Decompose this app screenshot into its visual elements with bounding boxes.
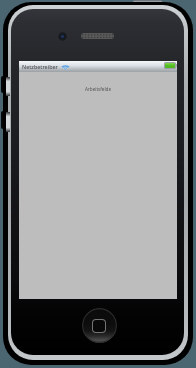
button[interactable]: Home: [82, 308, 117, 343]
other: Wi-Fi: [61, 62, 70, 70]
staticText: Netzbetreiber: [22, 63, 58, 70]
button[interactable]: Volume: [1, 111, 7, 129]
staticText: Arbeitsfelde: [19, 86, 177, 92]
button[interactable]: Silent switch: [1, 76, 7, 93]
button[interactable]: Power: [133, 0, 162, 7]
